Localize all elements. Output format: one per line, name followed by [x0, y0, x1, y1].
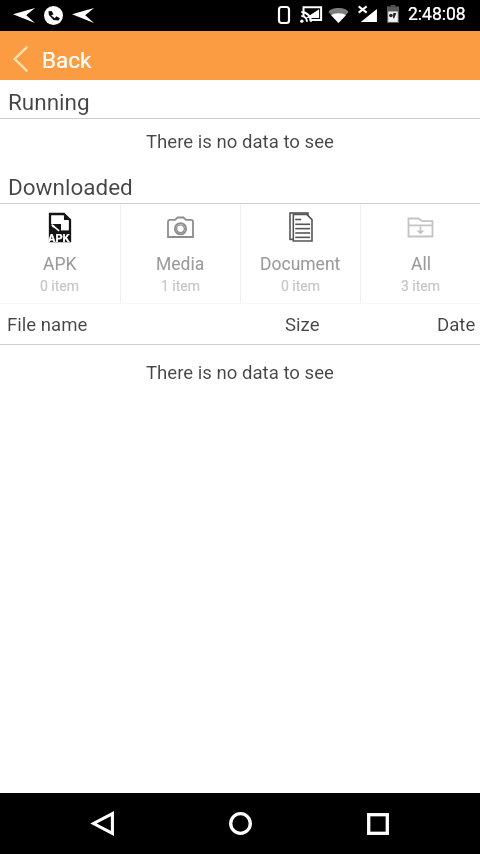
staticText: 0 item [40, 278, 80, 294]
staticText: There is no data to see [146, 131, 334, 153]
staticText: Media [156, 254, 205, 275]
button[interactable]: All [361, 204, 480, 303]
staticText: Date [437, 314, 476, 336]
staticText: There is no data to see [146, 362, 334, 384]
staticText: APK [43, 254, 77, 275]
button[interactable]: Recent apps [333, 793, 423, 854]
button[interactable]: Document [241, 204, 360, 303]
staticText: All [411, 254, 431, 275]
staticText: Downloaded [8, 174, 133, 200]
staticText: 3 item [401, 278, 441, 294]
button[interactable]: Media [121, 204, 240, 303]
button[interactable]: APK [0, 204, 120, 303]
staticText: 0 item [281, 278, 321, 294]
button[interactable]: Back [0, 31, 480, 80]
button[interactable]: Back [58, 793, 148, 854]
staticText: Running [8, 89, 90, 115]
staticText: 1 item [161, 278, 201, 294]
staticText: Size [285, 314, 320, 336]
staticText: Back [42, 47, 92, 73]
staticText: 2:48:08 [408, 4, 466, 25]
button[interactable]: Home [195, 793, 285, 854]
staticText: APK [48, 232, 70, 245]
staticText: Document [260, 254, 341, 275]
staticText: File name [7, 314, 88, 336]
